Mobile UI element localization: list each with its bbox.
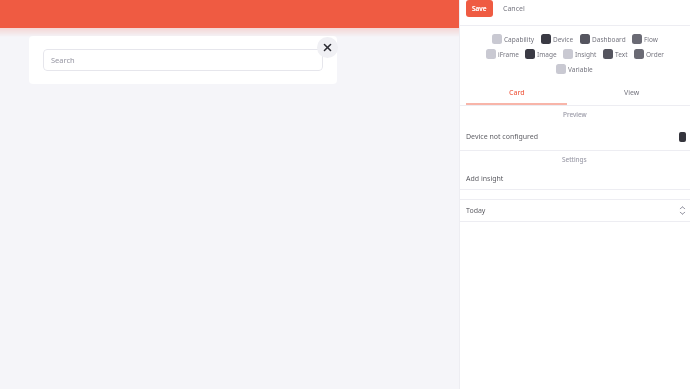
staticText: Cancel (503, 4, 525, 14)
button[interactable]: Cancel (503, 4, 525, 14)
button[interactable]: Search (43, 49, 323, 71)
button[interactable]: Device not configured (459, 123, 690, 150)
button[interactable]: Device (541, 34, 574, 44)
staticText: Capability (504, 35, 535, 44)
button[interactable]: Save (466, 0, 493, 17)
staticText: Card (509, 88, 525, 98)
button[interactable]: Card (459, 82, 574, 103)
button[interactable]: Image (525, 49, 557, 59)
button[interactable]: Add insight (459, 168, 690, 189)
staticText: Dashboard (592, 35, 626, 44)
button[interactable]: Today (459, 200, 690, 221)
staticText: Device not configured (466, 132, 539, 142)
staticText: Variable (568, 65, 593, 74)
staticText: Flow (644, 35, 658, 44)
staticText: iFrame (498, 50, 519, 59)
button[interactable]: Flow (632, 34, 658, 44)
button[interactable]: Insight (563, 49, 597, 59)
staticText: View (624, 88, 640, 98)
staticText: Save (472, 4, 487, 13)
button[interactable]: Text (603, 49, 628, 59)
staticText: Image (537, 50, 557, 59)
staticText: Text (615, 50, 628, 59)
button[interactable]: iFrame (486, 49, 519, 59)
staticText: Search (51, 55, 75, 65)
button[interactable]: Variable (556, 64, 593, 74)
staticText: Insight (575, 50, 597, 59)
staticText: Today (466, 206, 486, 216)
button[interactable]: Close (317, 37, 338, 58)
staticText: Order (646, 50, 664, 59)
staticText: Add insight (466, 174, 504, 184)
button[interactable]: Dashboard (580, 34, 626, 44)
staticText: Settings (562, 155, 587, 164)
staticText: Preview (563, 110, 587, 119)
button[interactable]: View (574, 82, 690, 103)
button[interactable]: Order (634, 49, 664, 59)
button[interactable]: Capability (492, 34, 535, 44)
staticText: Device (553, 35, 574, 44)
